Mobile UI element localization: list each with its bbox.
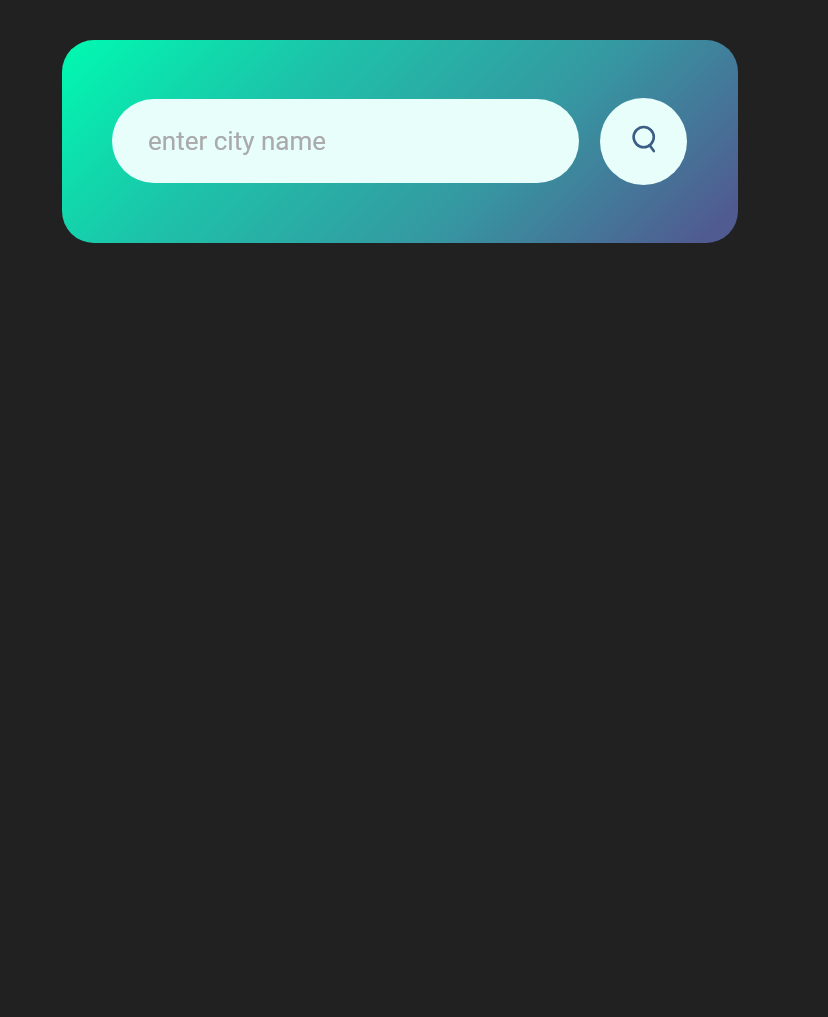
staticText: enter city name (148, 126, 326, 156)
button[interactable]: enter city name (112, 99, 579, 183)
button[interactable]: Search (600, 98, 687, 185)
